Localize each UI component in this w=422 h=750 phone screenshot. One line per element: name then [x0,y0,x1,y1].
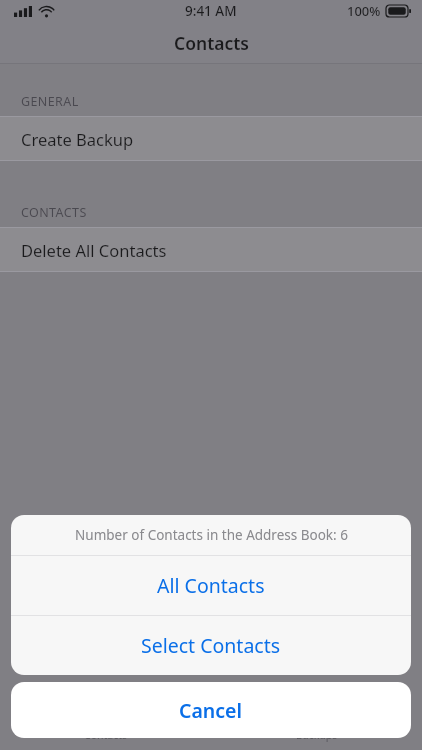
staticText: Select Contacts [141,632,281,659]
button[interactable]: All Contacts [11,556,411,615]
staticText: Contacts [174,31,249,55]
staticText: GENERAL [21,93,79,110]
button[interactable]: Select Contacts [11,616,411,675]
staticText: All Contacts [157,572,265,599]
staticText: CONTACTS [21,204,87,221]
staticText: Contacts [84,728,128,742]
button[interactable]: Create Backup [0,117,422,160]
button[interactable]: Cancel [11,682,411,738]
staticText: 9:41 AM [185,2,237,20]
staticText: Delete All Contacts [21,239,167,261]
staticText: Backups [296,728,338,742]
staticText: 100% [347,2,381,20]
staticText: Create Backup [21,128,134,150]
button[interactable]: Backups [211,728,422,742]
staticText: Cancel [179,697,243,724]
button[interactable]: Delete All Contacts [0,228,422,271]
staticText: Number of Contacts in the Address Book: … [75,526,348,544]
button[interactable]: Contacts [0,728,211,742]
